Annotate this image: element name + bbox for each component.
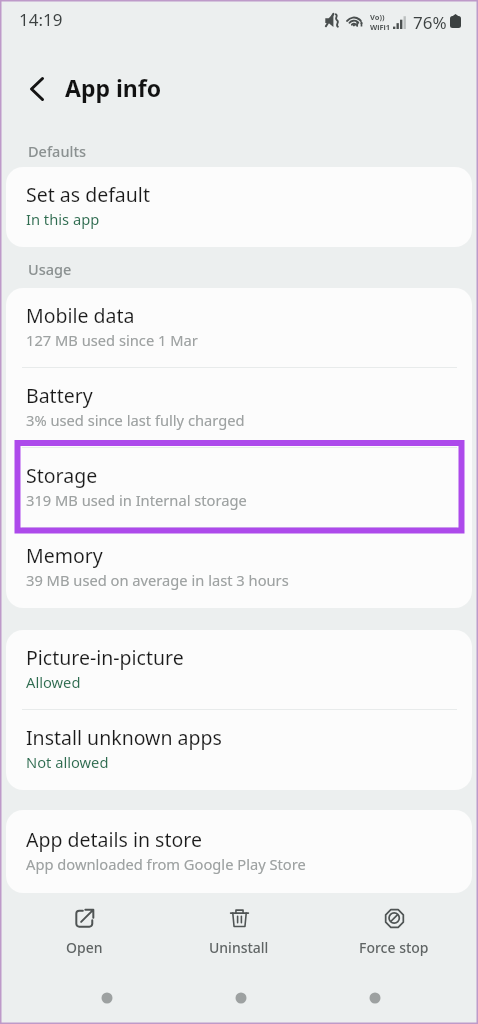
- staticText: Usage: [28, 259, 72, 279]
- staticText: Uninstall: [209, 938, 269, 957]
- button[interactable]: Battery: [6, 368, 472, 448]
- other: Uninstall: [229, 908, 250, 929]
- staticText: 14:19: [19, 8, 63, 31]
- button[interactable]: Storage: [6, 448, 472, 528]
- staticText: Force stop: [359, 938, 429, 957]
- button[interactable]: App details in store: [6, 810, 472, 893]
- staticText: 127 MB used since 1 Mar: [26, 330, 198, 350]
- staticText: Storage: [26, 462, 98, 489]
- staticText: App details in store: [26, 826, 202, 853]
- staticText: Install unknown apps: [26, 724, 222, 751]
- other: Force stop: [384, 908, 405, 929]
- button[interactable]: Force stop: [339, 908, 449, 957]
- staticText: Not allowed: [26, 752, 109, 772]
- button[interactable]: Install unknown apps: [6, 710, 472, 790]
- button[interactable]: Back: [15, 71, 51, 107]
- button[interactable]: Open app: [29, 908, 139, 957]
- staticText: App downloaded from Google Play Store: [26, 854, 306, 874]
- staticText: 3% used since last fully charged: [26, 410, 245, 430]
- button[interactable]: Uninstall: [184, 908, 294, 957]
- button[interactable]: Set as default: [6, 167, 472, 247]
- staticText: Defaults: [28, 141, 86, 161]
- staticText: In this app: [26, 209, 100, 229]
- staticText: Battery: [26, 382, 93, 409]
- staticText: Set as default: [26, 181, 150, 208]
- staticText: Picture-in-picture: [26, 644, 184, 671]
- other: Open app: [74, 908, 95, 929]
- staticText: Open: [66, 938, 103, 957]
- staticText: Mobile data: [26, 302, 135, 329]
- staticText: 76%: [413, 11, 447, 34]
- button[interactable]: Picture-in-picture: [6, 630, 472, 710]
- staticText: Allowed: [26, 672, 81, 692]
- staticText: Memory: [26, 542, 103, 569]
- staticText: 319 MB used in Internal storage: [26, 490, 247, 510]
- staticText: Vo)): [370, 12, 385, 22]
- button[interactable]: Mobile data: [6, 288, 472, 368]
- staticText: 39 MB used on average in last 3 hours: [26, 570, 289, 590]
- staticText: WiFi1: [370, 22, 391, 32]
- staticText: App info: [65, 72, 162, 103]
- button[interactable]: Memory: [6, 528, 472, 608]
